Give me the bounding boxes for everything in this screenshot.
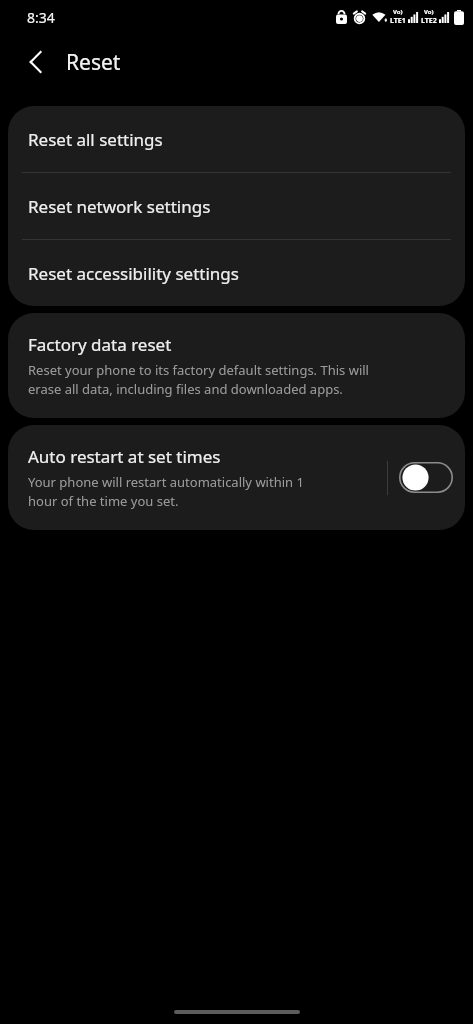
button[interactable]: Auto restart at set times, off (399, 462, 453, 493)
staticText: Vo) (424, 8, 434, 16)
staticText: Vo) (393, 8, 403, 16)
button[interactable]: Factory data reset (8, 313, 465, 418)
staticText: LTE2 (421, 16, 437, 26)
staticText: LTE1 (390, 16, 406, 26)
button[interactable]: Reset network settings (8, 173, 465, 239)
staticText: Factory data reset (28, 333, 172, 356)
staticText: Reset all settings (28, 128, 163, 151)
button[interactable]: Auto restart at set times (8, 425, 465, 530)
staticText: Auto restart at set times (28, 445, 221, 468)
staticText: Reset (66, 48, 121, 77)
button[interactable]: Back (14, 40, 58, 84)
staticText: Your phone will restart automatically wi… (28, 473, 304, 510)
staticText: Reset network settings (28, 195, 211, 218)
button[interactable]: Reset accessibility settings (8, 240, 465, 306)
staticText: Reset your phone to its factory default … (28, 361, 369, 398)
staticText: 8:34 (27, 8, 55, 27)
button[interactable]: Reset all settings (8, 106, 465, 172)
staticText: Reset accessibility settings (28, 262, 239, 285)
